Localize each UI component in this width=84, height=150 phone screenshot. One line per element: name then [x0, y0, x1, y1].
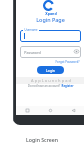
- button[interactable]: Register: [61, 84, 74, 88]
- button[interactable]: Home: [47, 107, 54, 114]
- button[interactable]: Password: [20, 46, 81, 58]
- button[interactable]: Login: [37, 66, 64, 74]
- staticText: Do not have an account?: [27, 84, 61, 88]
- staticText: Login Screen: [26, 136, 58, 143]
- button[interactable]: Show password: [73, 48, 80, 55]
- button[interactable]: [20, 30, 81, 42]
- staticText: Username: [24, 28, 38, 32]
- button[interactable]: Back: [70, 107, 77, 114]
- staticText: A p p L a u n c h p a d: [31, 78, 71, 83]
- staticText: Forgot Password?: [55, 60, 80, 64]
- staticText: Xpand: [45, 11, 57, 16]
- staticText: Login: [46, 68, 55, 72]
- button[interactable]: Recent apps: [24, 107, 31, 114]
- button[interactable]: Forgot Password?: [54, 59, 81, 65]
- staticText: Password: [24, 50, 41, 55]
- staticText: Login Page: [36, 16, 65, 23]
- staticText: Register: [61, 84, 74, 88]
